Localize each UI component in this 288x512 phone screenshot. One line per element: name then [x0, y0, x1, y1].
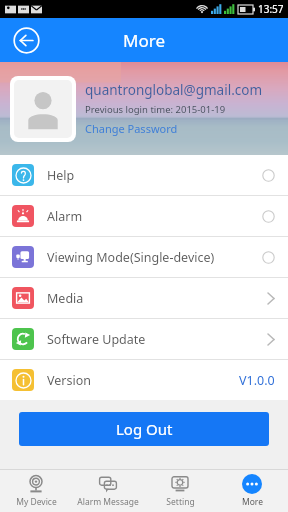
staticText: quantronglobal@gmail.com [85, 81, 263, 99]
staticText: Version [47, 372, 91, 389]
staticText: Setting [166, 496, 195, 508]
button[interactable]: Log Out [19, 412, 269, 446]
button[interactable]: Software Update [0, 319, 288, 359]
button[interactable]: Setting [144, 470, 216, 512]
button[interactable]: Alarm Message [72, 470, 144, 512]
staticText: Help [47, 167, 75, 184]
button[interactable]: Change Password [85, 121, 178, 136]
staticText: Previous login time: 2015-01-19 [85, 103, 226, 116]
staticText: 13:57 [258, 2, 284, 16]
staticText: Log Out [116, 419, 173, 439]
button[interactable]: Back [9, 23, 43, 57]
button[interactable]: Help [0, 155, 288, 195]
button[interactable]: My Device [0, 470, 72, 512]
staticText: More [123, 29, 165, 52]
staticText: My Device [16, 496, 57, 508]
staticText: Alarm [47, 208, 83, 225]
button[interactable]: More [216, 470, 288, 512]
staticText: Media [47, 290, 84, 307]
staticText: More [242, 496, 263, 508]
staticText: Viewing Mode(Single-device) [47, 249, 215, 266]
staticText: Alarm Message [77, 496, 139, 508]
button[interactable]: Media [0, 278, 288, 318]
staticText: V1.0.0 [239, 372, 275, 389]
button[interactable]: Version [0, 360, 288, 400]
staticText: Software Update [47, 331, 146, 348]
button[interactable]: Alarm [0, 196, 288, 236]
button[interactable]: Profile photo [14, 80, 72, 138]
button[interactable]: Viewing Mode(Single-device) [0, 237, 288, 277]
